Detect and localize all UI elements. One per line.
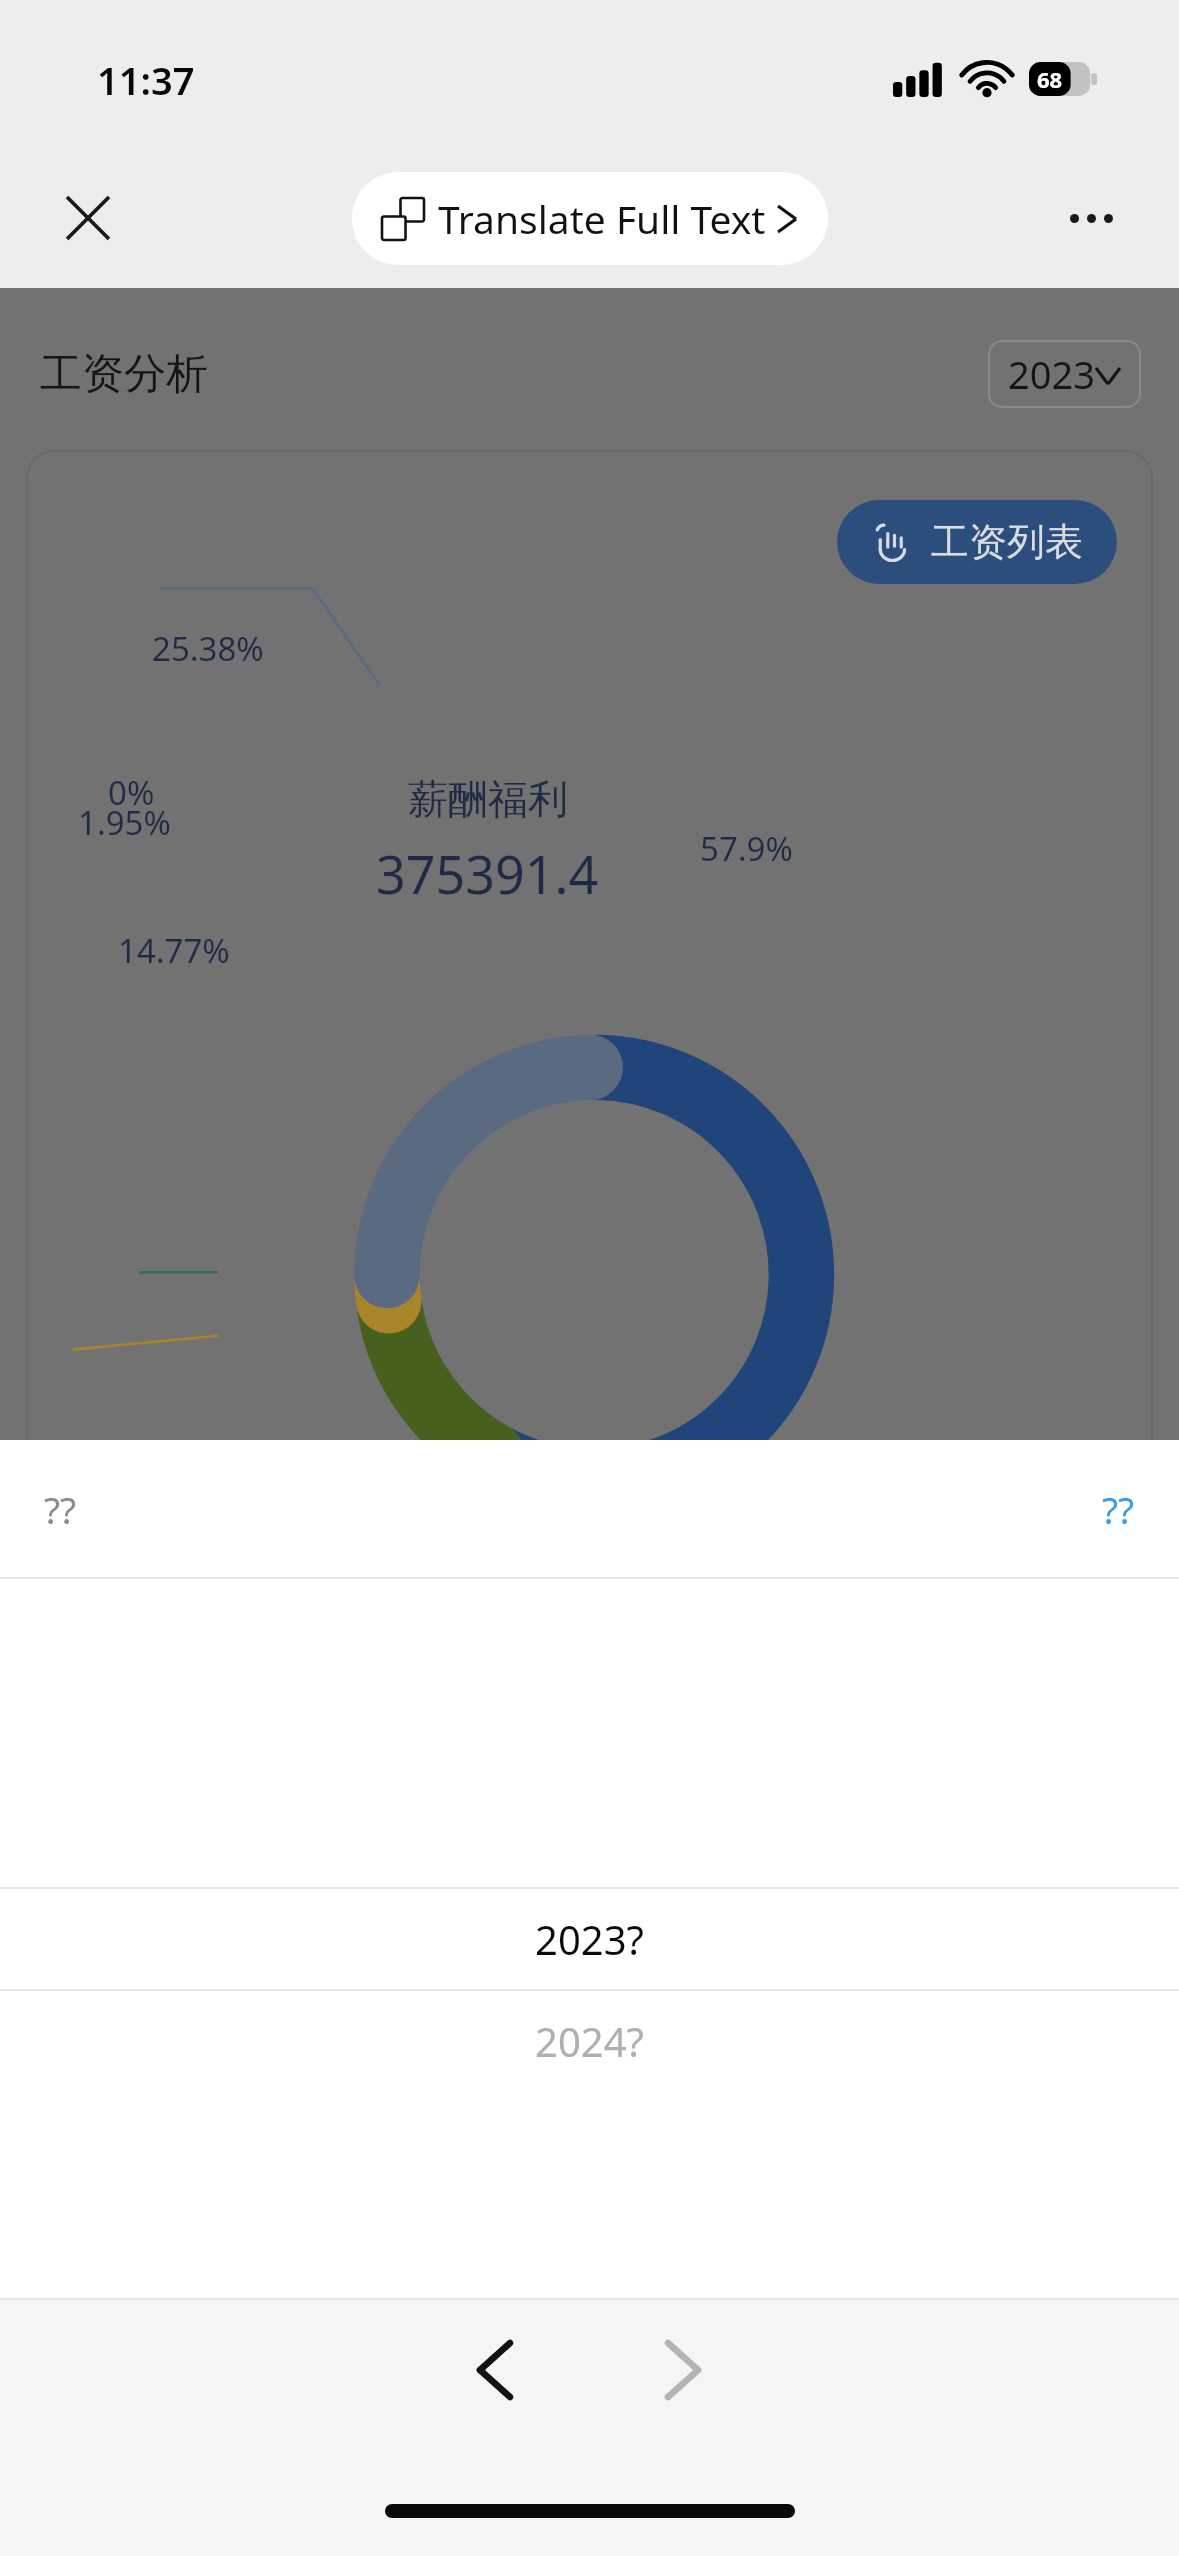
button[interactable]: 2024? — [0, 1991, 1179, 2091]
button[interactable]: ?? — [0, 1470, 105, 1548]
staticText: 11:37 — [97, 54, 195, 106]
staticText: 工资列表 — [931, 518, 1083, 566]
staticText: 1.95% — [78, 800, 171, 845]
staticText: 375391.4 — [376, 838, 599, 909]
button[interactable]: Next — [628, 2315, 738, 2425]
button[interactable]: 2023? — [0, 1889, 1179, 1989]
staticText: 57.9% — [700, 826, 793, 871]
staticText: 工资分析 — [40, 348, 208, 401]
button[interactable]: ?? — [1074, 1470, 1179, 1548]
staticText: ?? — [1102, 1484, 1135, 1534]
button[interactable]: 2023 — [988, 340, 1141, 408]
staticText: 薪酬福利 — [408, 774, 568, 824]
button[interactable]: Close — [50, 180, 126, 256]
staticText: 25.38% — [152, 626, 264, 671]
button[interactable]: Translate Full Text — [352, 172, 828, 265]
button[interactable]: 工资列表 — [837, 500, 1117, 584]
staticText: 2023? — [535, 1912, 644, 1966]
staticText: 68 — [1037, 64, 1063, 94]
staticText: 2024? — [535, 2014, 644, 2068]
staticText: 2023 — [1008, 348, 1095, 400]
button[interactable]: Previous — [440, 2315, 550, 2425]
staticText: ?? — [44, 1484, 77, 1534]
button[interactable]: More options — [1053, 180, 1129, 256]
staticText: 14.77% — [118, 928, 230, 973]
staticText: Translate Full Text — [438, 192, 766, 245]
staticText: 0% — [108, 770, 155, 815]
